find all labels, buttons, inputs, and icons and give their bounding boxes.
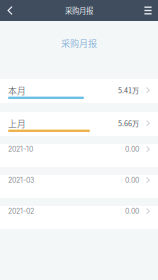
button[interactable]: 2021-03 (0, 175, 158, 198)
staticText: 本月 (8, 84, 26, 97)
staticText: 采购月报 (61, 36, 97, 49)
staticText: 5.66万 (118, 118, 139, 128)
staticText: 0.00 (125, 176, 139, 184)
staticText: 采购月报 (65, 5, 93, 16)
staticText: 0.00 (125, 145, 139, 153)
staticText: 2021-03 (8, 176, 34, 184)
button[interactable]: 本月 (0, 79, 158, 103)
button[interactable]: 上月 (0, 112, 158, 136)
staticText: 5.41万 (118, 85, 139, 95)
staticText: 2021-02 (8, 207, 34, 215)
button[interactable]: 2021-02 (0, 206, 158, 229)
staticText: 上月 (8, 117, 26, 130)
staticText: 2021-10 (8, 145, 33, 153)
button[interactable]: Back (0, 0, 20, 21)
button[interactable]: 2021-10 (0, 144, 158, 167)
staticText: 0.00 (125, 207, 139, 215)
button[interactable]: Menu (138, 0, 158, 21)
